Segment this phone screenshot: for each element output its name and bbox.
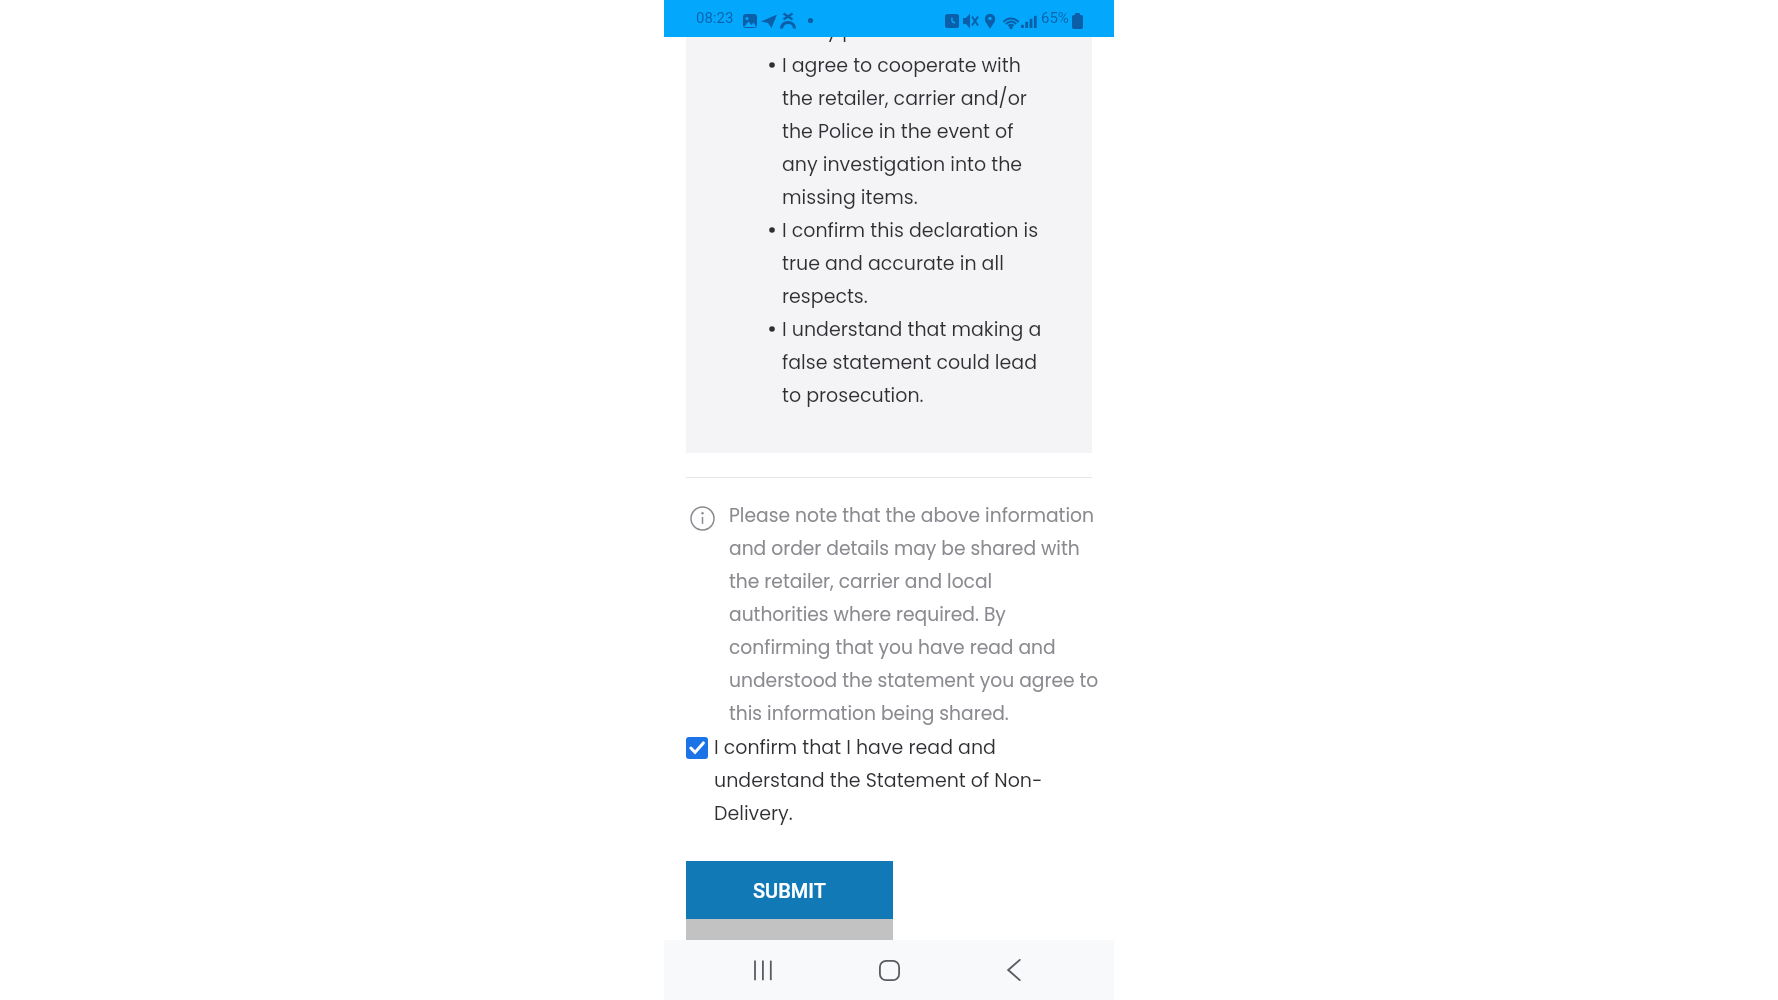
button[interactable]: I confirm that I have read and	[686, 730, 1046, 829]
staticText: respects.	[782, 279, 868, 312]
button[interactable]: SUBMIT	[686, 861, 893, 919]
staticText: any investigation into the	[782, 147, 1023, 180]
staticText: SUBMIT	[753, 879, 826, 902]
staticText: Delivery.	[714, 796, 793, 829]
staticText: the retailer, carrier and/or	[782, 81, 1027, 114]
staticText: I agree to cooperate with	[782, 48, 1021, 81]
button[interactable]: Back	[990, 945, 1038, 995]
staticText: understand the Statement of Non-	[714, 763, 1043, 796]
staticText: 65%	[1041, 9, 1069, 27]
staticText: I confirm that I have read and	[714, 730, 996, 763]
staticText: understood the statement you agree to	[729, 663, 1099, 696]
staticText: false statement could lead	[782, 345, 1037, 378]
other: Information	[690, 506, 715, 531]
button[interactable]: Recent apps	[740, 945, 788, 995]
staticText: 08:23	[696, 9, 734, 27]
staticText: this information being shared.	[729, 696, 1009, 729]
staticText: Please note that the above information	[729, 498, 1094, 531]
staticText: the Police in the event of	[782, 114, 1014, 147]
staticText: the retailer, carrier and local	[729, 564, 993, 597]
staticText: carry parcels	[788, 13, 914, 46]
staticText: confirming that you have read and	[729, 630, 1056, 663]
staticText: to prosecution.	[782, 378, 924, 411]
staticText: true and accurate in all	[782, 246, 1004, 279]
button[interactable]: Home	[865, 945, 913, 995]
staticText: I understand that making a	[782, 312, 1042, 345]
staticText: missing items.	[782, 180, 918, 213]
staticText: authorities where required. By	[729, 597, 1006, 630]
staticText: and order details may be shared with	[729, 531, 1080, 564]
staticText: I confirm this declaration is	[782, 213, 1039, 246]
